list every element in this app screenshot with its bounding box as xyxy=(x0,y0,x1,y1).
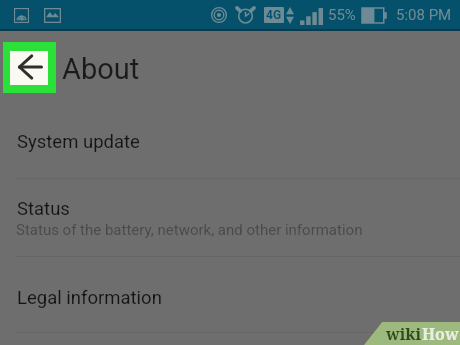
staticText: System update xyxy=(17,131,140,153)
staticText: 55% xyxy=(328,6,356,24)
button[interactable]: System update xyxy=(0,110,460,178)
staticText: 4G xyxy=(266,8,282,22)
staticText: 5:08 PM xyxy=(396,6,452,24)
button[interactable]: Back xyxy=(3,42,56,93)
button[interactable]: Legal information xyxy=(0,257,460,332)
staticText: wiki xyxy=(386,323,422,345)
staticText: Status of the battery, network, and othe… xyxy=(16,221,363,239)
button[interactable]: Status xyxy=(0,179,460,256)
staticText: How xyxy=(422,323,459,345)
staticText: Status xyxy=(17,198,70,220)
staticText: About xyxy=(62,52,140,86)
staticText: Legal information xyxy=(17,287,162,309)
